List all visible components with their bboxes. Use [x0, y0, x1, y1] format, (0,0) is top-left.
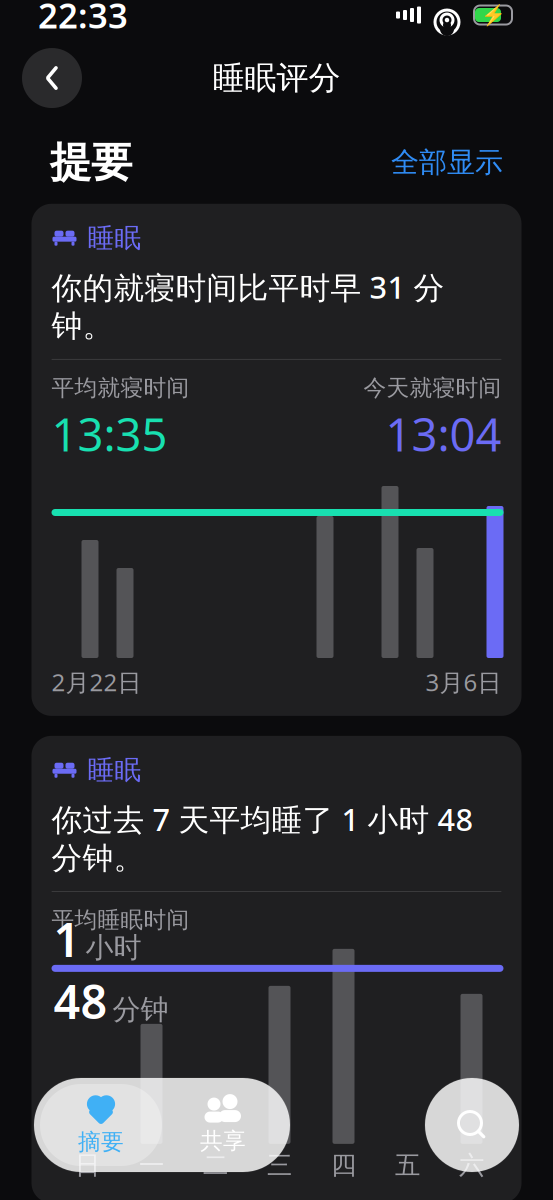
- staticText: 13:04: [385, 404, 501, 464]
- button[interactable]: 返回: [22, 48, 82, 108]
- staticText: 提要: [50, 137, 132, 188]
- button[interactable]: 全部显示: [391, 145, 503, 180]
- staticText: 平均就寝时间: [51, 374, 189, 402]
- staticText: 今天就寝时间: [363, 374, 501, 402]
- staticText: 摘要: [78, 1128, 124, 1156]
- button[interactable]: 共享: [162, 1084, 284, 1166]
- button[interactable]: 摘要: [40, 1084, 162, 1166]
- staticText: 分钟: [112, 992, 168, 1027]
- staticText: 四: [331, 1150, 356, 1181]
- staticText: 3月6日: [425, 666, 501, 698]
- staticText: 48: [53, 970, 107, 1032]
- staticText: 全部显示: [391, 145, 503, 180]
- staticText: 睡眠: [87, 754, 141, 787]
- staticText: 日: [75, 1150, 100, 1181]
- staticText: 22:33: [38, 0, 128, 38]
- staticText: 2月22日: [51, 666, 141, 698]
- staticText: 二: [203, 1150, 228, 1181]
- staticText: 小时: [85, 930, 141, 965]
- staticText: 三: [267, 1150, 292, 1181]
- staticText: 你过去 7 天平均睡了 1 小时 48 分钟。: [51, 799, 473, 877]
- button[interactable]: 搜索: [425, 1078, 519, 1172]
- staticText: 六: [459, 1150, 484, 1181]
- staticText: 平均睡眠时间: [51, 906, 189, 934]
- staticText: ⚡: [480, 4, 505, 26]
- staticText: 13:35: [51, 404, 167, 464]
- staticText: 五: [395, 1150, 420, 1181]
- staticText: 一: [139, 1150, 164, 1181]
- staticText: 你的就寝时间比平时早 31 分钟。: [51, 267, 444, 345]
- staticText: 共享: [200, 1127, 246, 1155]
- staticText: 1: [53, 908, 80, 970]
- staticText: 睡眠: [87, 222, 141, 255]
- staticText: 睡眠评分: [212, 58, 340, 98]
